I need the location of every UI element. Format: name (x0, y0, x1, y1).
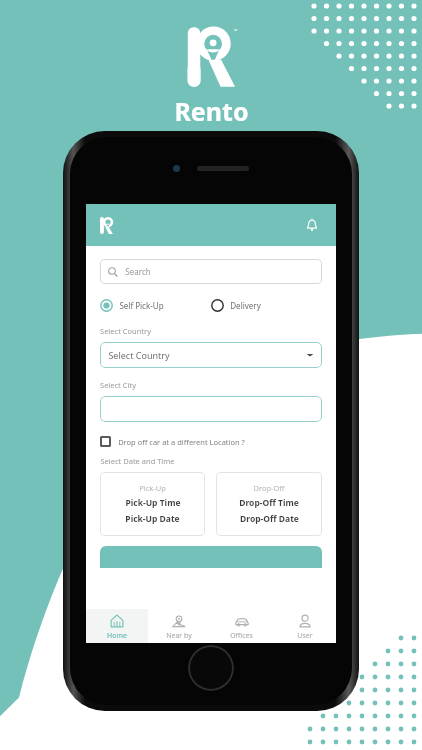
button[interactable]: Offices (210, 609, 273, 643)
staticText: Near by (166, 631, 192, 641)
staticText: Pick-Up Time (125, 497, 181, 509)
button[interactable]: Home button (188, 645, 234, 691)
staticText: Rento (174, 94, 249, 128)
staticText: Pick-Up (139, 483, 166, 493)
staticText: Search (125, 266, 151, 277)
button[interactable]: Home (86, 609, 148, 643)
staticText: Self Pick-Up (119, 300, 164, 311)
button[interactable]: Select Country (100, 342, 322, 368)
staticText: Drop-Off Date (240, 513, 299, 525)
button[interactable]: Notifications (300, 213, 324, 237)
staticText: Delivery (230, 300, 261, 311)
button[interactable]: Drop off car at a different Location ? (100, 436, 322, 447)
staticText: Drop-Off (253, 483, 285, 493)
staticText: Drop off car at a different Location ? (118, 437, 245, 447)
button[interactable]: Delivery (211, 299, 322, 312)
staticText: Select City (100, 380, 136, 390)
staticText: Select Date and Time (100, 456, 175, 466)
button[interactable]: Self Pick-Up (100, 299, 211, 312)
staticText: Drop-Off Time (239, 497, 299, 509)
button[interactable]: Drop-Off (216, 472, 322, 536)
button[interactable] (100, 396, 322, 422)
button[interactable]: Pick-Up (100, 472, 205, 536)
button[interactable]: User (273, 609, 336, 643)
staticText: Home (107, 631, 127, 641)
staticText: Pick-Up Date (125, 513, 180, 525)
button[interactable]: Near by (148, 609, 210, 643)
staticText: Select Country (108, 349, 170, 361)
button[interactable] (100, 546, 322, 568)
staticText: User (297, 631, 313, 641)
staticText: Offices (230, 631, 253, 641)
button[interactable]: Search (100, 259, 322, 284)
staticText: Select Country (100, 326, 151, 336)
